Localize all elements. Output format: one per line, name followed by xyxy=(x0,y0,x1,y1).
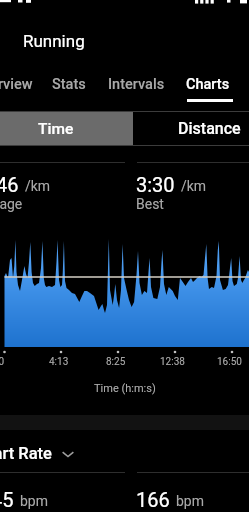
staticText: Average xyxy=(0,196,23,212)
staticText: 4:13 xyxy=(49,356,69,368)
staticText: 16:50 xyxy=(217,356,242,368)
button[interactable]: Charts xyxy=(171,64,245,104)
staticText: 166 xyxy=(136,488,170,511)
staticText: bpm xyxy=(20,493,48,509)
staticText: 46 xyxy=(0,173,19,196)
staticText: Time (h:m:s) xyxy=(94,382,156,395)
button[interactable]: Distance xyxy=(133,112,249,145)
staticText: 12:38 xyxy=(160,356,185,368)
staticText: Time xyxy=(38,120,74,138)
staticText: Distance xyxy=(178,119,241,138)
staticText: Overview xyxy=(0,76,33,93)
staticText: 8:25 xyxy=(106,356,126,368)
staticText: Heart Rate xyxy=(0,444,52,463)
staticText: /km xyxy=(181,178,207,194)
button[interactable]: Stats xyxy=(32,64,106,104)
staticText: Running xyxy=(23,31,85,51)
staticText: 00 xyxy=(0,356,5,368)
staticText: Intervals xyxy=(108,76,165,93)
staticText: 3:30 xyxy=(136,173,175,196)
other: Status bar xyxy=(0,0,249,6)
staticText: Stats xyxy=(52,76,86,93)
button[interactable]: Intervals xyxy=(99,64,173,104)
staticText: /km xyxy=(25,178,51,194)
staticText: bpm xyxy=(176,493,204,509)
staticText: Best xyxy=(136,196,164,212)
button[interactable]: Overview xyxy=(0,64,40,104)
staticText: Charts xyxy=(186,76,230,93)
staticText: 45 xyxy=(0,488,14,511)
button[interactable]: Time xyxy=(0,112,133,145)
button[interactable]: Heart Rate xyxy=(0,444,75,463)
